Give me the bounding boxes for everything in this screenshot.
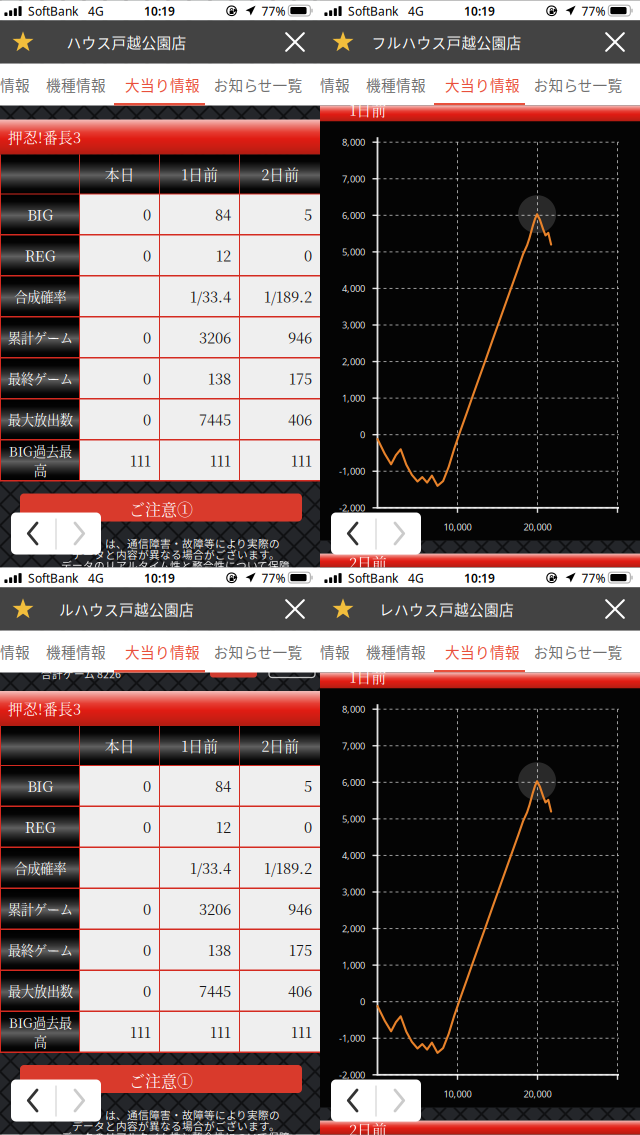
button[interactable]: 前へ — [331, 512, 375, 554]
staticText: 2,000 — [342, 922, 365, 935]
button[interactable]: 閉じる — [592, 20, 638, 63]
staticText: 111 — [130, 1021, 151, 1042]
staticText: 0 — [143, 204, 151, 225]
staticText: 111 — [291, 1021, 312, 1042]
staticText: 1,000 — [342, 392, 365, 404]
staticText: 機種情報 — [46, 641, 106, 662]
button[interactable]: お知らせ一覧 — [526, 630, 630, 672]
staticText: お知らせ一覧 — [213, 74, 302, 95]
staticText: 8,000 — [342, 136, 365, 148]
staticText: ご注意① — [129, 1068, 193, 1091]
button[interactable]: 情報 — [0, 630, 38, 672]
button[interactable]: 次へ — [377, 512, 421, 554]
staticText: 情報 — [0, 74, 30, 95]
staticText: 7445 — [199, 409, 231, 430]
staticText: ハウス戸越公園店 — [66, 31, 186, 53]
staticText: 20,000 — [523, 521, 551, 533]
button[interactable]: 大当り情報 — [118, 630, 207, 672]
staticText: 情報 — [320, 641, 350, 662]
button[interactable]: お気に入り — [320, 20, 366, 63]
button[interactable]: 機種情報 — [357, 630, 435, 672]
staticText: 1日前 — [349, 99, 386, 120]
button[interactable]: 情報 — [312, 63, 358, 105]
staticText: 138 — [208, 368, 231, 389]
staticText: 4,000 — [342, 282, 365, 295]
staticText: 946 — [288, 327, 312, 348]
staticText: 0 — [143, 775, 151, 796]
staticText: -1,000 — [339, 465, 365, 477]
staticText: フルハウス戸越公園店 — [371, 31, 521, 53]
staticText: 20,000 — [523, 1088, 551, 1100]
staticText: 111 — [210, 450, 231, 471]
staticText: 0 — [360, 428, 365, 441]
button[interactable]: 次へ — [377, 1079, 421, 1121]
staticText: 2日前 — [349, 552, 387, 573]
staticText: データのリアルタイム性と整合性について保障 — [61, 1129, 290, 1135]
staticText: 111 — [291, 450, 312, 471]
staticText: 0 — [143, 409, 151, 430]
button[interactable]: 大当り情報 — [438, 63, 527, 105]
staticText: 2日前 — [261, 735, 299, 756]
staticText: 1,000 — [342, 959, 365, 971]
staticText: 4G — [408, 3, 424, 19]
button[interactable]: 前へ — [11, 512, 55, 554]
button[interactable]: 機種情報 — [37, 630, 115, 672]
staticText: 77% — [261, 3, 285, 19]
button[interactable]: 前へ — [11, 1079, 55, 1121]
staticText: 合計ゲーム 8226 — [41, 666, 121, 681]
button[interactable]: 機種情報 — [357, 63, 435, 105]
staticText: 押忍!番長3 — [8, 698, 81, 719]
staticText: 0 — [143, 816, 151, 837]
staticText: 1/189.2 — [264, 857, 312, 878]
staticText: 8,000 — [342, 703, 365, 715]
staticText: 10:19 — [464, 3, 495, 19]
staticText: 大当り情報 — [125, 74, 200, 95]
staticText: 0 — [143, 939, 151, 960]
button[interactable]: 大当り情報 — [438, 630, 527, 672]
button[interactable]: お知らせ一覧 — [206, 630, 310, 672]
staticText: -2,000 — [339, 502, 365, 514]
button[interactable]: 次へ — [57, 1079, 101, 1121]
button[interactable]: 前へ — [331, 1079, 375, 1121]
button[interactable]: 閉じる — [272, 587, 318, 630]
staticText: ルハウス戸越公園店 — [59, 598, 194, 620]
button[interactable]: お知らせ一覧 — [526, 63, 630, 105]
staticText: 2,000 — [342, 355, 365, 368]
button[interactable]: 機種情報 — [37, 63, 115, 105]
button[interactable]: 閉じる — [272, 20, 318, 63]
staticText: 最大放出数 — [7, 410, 72, 429]
staticText: 0 — [143, 898, 151, 919]
button[interactable]: お知らせ一覧 — [206, 63, 310, 105]
staticText: 本日 — [104, 735, 134, 756]
staticText: 1/189.2 — [264, 286, 312, 307]
button[interactable]: 情報 — [0, 63, 38, 105]
staticText: 175 — [289, 939, 312, 960]
staticText: お知らせ一覧 — [533, 74, 622, 95]
staticText: BIG過去最 高 — [8, 1013, 71, 1051]
staticText: 406 — [288, 980, 312, 1001]
staticText: 3,000 — [342, 319, 365, 331]
button[interactable]: お気に入り — [0, 20, 46, 63]
button[interactable]: 閉じる — [592, 587, 638, 630]
staticText: 2日前 — [261, 163, 299, 185]
button[interactable]: お気に入り — [0, 587, 46, 630]
staticText: SoftBank — [28, 3, 78, 19]
staticText: 5,000 — [342, 813, 365, 825]
staticText: 6,000 — [342, 209, 365, 221]
staticText: BIG — [27, 775, 53, 796]
staticText: REG — [24, 816, 55, 837]
button[interactable]: 情報 — [312, 630, 358, 672]
button[interactable]: 次へ — [57, 512, 101, 554]
staticText: 0 — [143, 245, 151, 266]
staticText: 機種情報 — [46, 74, 106, 95]
staticText: 5 — [304, 204, 312, 225]
staticText: 77% — [581, 3, 605, 19]
staticText: データと内容が異なる場合がございます。 — [72, 1118, 280, 1133]
button[interactable]: お気に入り — [320, 587, 366, 630]
staticText: 0 — [360, 995, 365, 1008]
staticText: SoftBank — [348, 3, 398, 19]
staticText: 4G — [88, 3, 104, 19]
button[interactable]: 大当り情報 — [118, 63, 207, 105]
staticText: 情報 — [320, 74, 350, 95]
staticText: 406 — [288, 409, 312, 430]
